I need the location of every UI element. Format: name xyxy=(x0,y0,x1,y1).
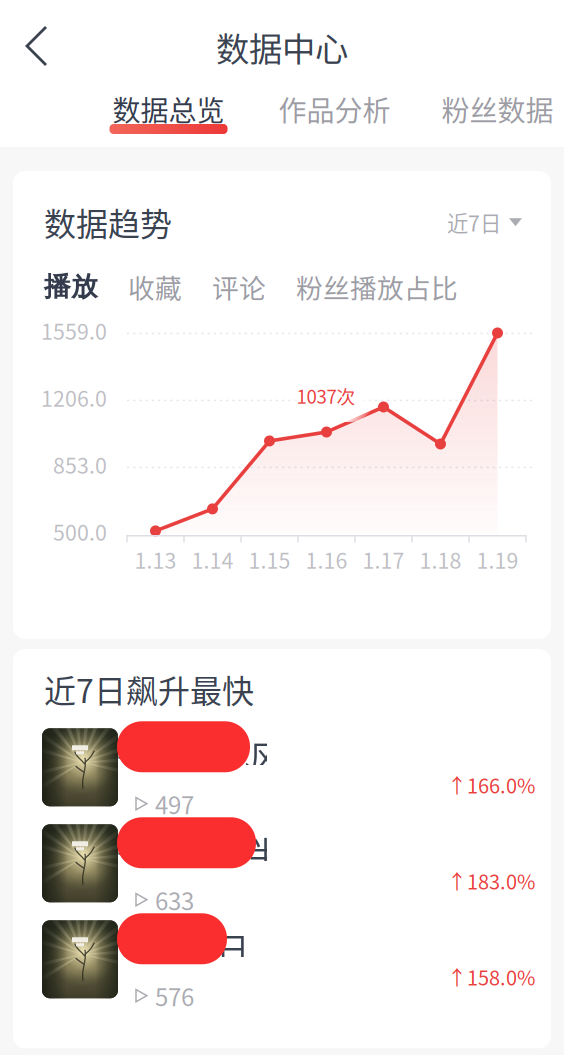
staticText: 数据总览 xyxy=(112,89,224,129)
staticText: ↑183.0% xyxy=(447,866,535,895)
button[interactable]: 粉丝数据 xyxy=(432,94,562,142)
staticText: 1.15 xyxy=(248,544,290,575)
staticText: 评论 xyxy=(212,267,266,306)
staticText: 收藏 xyxy=(128,267,182,306)
staticText: 1.18 xyxy=(419,544,461,575)
button[interactable]: 一路向北风 xyxy=(13,714,551,810)
staticText: 近7日 xyxy=(447,207,501,238)
staticText: 近7日飙升最快 xyxy=(44,666,254,712)
button[interactable]: Back xyxy=(0,11,68,83)
staticText: 记录生日 xyxy=(117,923,249,972)
button[interactable]: 数据总览 xyxy=(103,94,233,142)
staticText: 一个人夜半 xyxy=(117,827,282,876)
staticText: 1.13 xyxy=(134,544,176,575)
staticText: 1037次 xyxy=(296,382,355,409)
button[interactable]: 一个人夜半 xyxy=(13,810,551,906)
button[interactable]: 播放 xyxy=(44,270,98,303)
staticText: 576 xyxy=(155,978,194,1013)
staticText: ↑158.0% xyxy=(447,962,535,991)
staticText: 500.0 xyxy=(53,516,107,547)
button[interactable]: 近7日 xyxy=(447,207,522,238)
staticText: 1.14 xyxy=(191,544,233,575)
staticText: 作品分析 xyxy=(278,89,390,129)
staticText: 497 xyxy=(155,786,194,821)
staticText: 数据中心 xyxy=(216,23,348,71)
staticText: 1206.0 xyxy=(41,382,107,413)
staticText: 粉丝数据 xyxy=(441,89,553,129)
staticText: 853.0 xyxy=(53,449,107,480)
button[interactable]: 作品分析 xyxy=(269,94,399,142)
staticText: 633 xyxy=(155,882,194,917)
button[interactable]: 评论 xyxy=(212,267,266,306)
staticText: 1.19 xyxy=(476,544,518,575)
staticText: 一路向北风 xyxy=(117,731,282,780)
staticText: 1559.0 xyxy=(41,315,107,346)
staticText: 播放 xyxy=(44,270,98,303)
staticText: ↑166.0% xyxy=(447,770,535,799)
button[interactable]: 记录生日 xyxy=(13,906,551,1002)
staticText: 1.16 xyxy=(305,544,347,575)
staticText: 数据趋势 xyxy=(44,199,172,245)
staticText: 1.17 xyxy=(362,544,404,575)
button[interactable]: 粉丝播放占比 xyxy=(296,267,458,306)
staticText: 粉丝播放占比 xyxy=(296,267,458,306)
button[interactable]: 收藏 xyxy=(128,267,182,306)
